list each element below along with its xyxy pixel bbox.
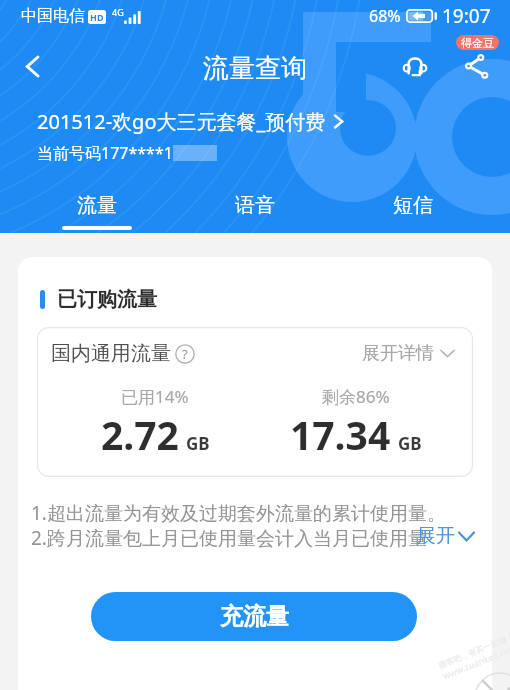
button[interactable]: 展开: [417, 524, 475, 548]
staticText: 流量: [77, 193, 117, 218]
staticText: 68%: [369, 5, 401, 27]
button[interactable]: 语音: [209, 193, 301, 230]
staticText: 流量查询: [203, 52, 307, 85]
staticText: 赚客吧，有买一起赚！: [437, 631, 510, 670]
staticText: 国内通用流量: [51, 341, 171, 366]
staticText: 已订购流量: [57, 287, 157, 312]
staticText: 17.34: [290, 408, 391, 461]
button[interactable]: Back: [8, 42, 56, 90]
staticText: 展开详情: [362, 342, 434, 365]
staticText: 1.超出流量为有效及过期套外流量的累计使用量。: [31, 500, 446, 526]
staticText: 剩余86%: [322, 385, 390, 408]
staticText: 201512-欢go大三元套餐_预付费: [37, 108, 326, 135]
staticText: 语音: [235, 193, 275, 218]
button[interactable]: Help: [175, 344, 195, 364]
staticText: GB: [186, 432, 210, 455]
staticText: 得金豆: [461, 36, 494, 50]
staticText: 中国电信: [21, 6, 85, 26]
staticText: GB: [398, 432, 422, 455]
staticText: ?: [182, 345, 188, 363]
button[interactable]: 201512-欢go大三元套餐_预付费: [37, 108, 343, 135]
staticText: www.zuanke8.com: [441, 640, 510, 681]
staticText: 2.72: [101, 408, 179, 461]
button[interactable]: 流量: [51, 193, 143, 230]
staticText: 2.跨月流量包上月已使用量会计入当月已使用量: [31, 525, 427, 551]
button[interactable]: 短信: [367, 193, 459, 230]
button[interactable]: 充流量: [91, 592, 417, 641]
staticText: 展开: [417, 524, 455, 548]
button[interactable]: Customer service: [393, 44, 437, 88]
staticText: 短信: [393, 193, 433, 218]
button[interactable]: 展开详情: [362, 342, 455, 365]
staticText: 4G: [112, 6, 124, 18]
button[interactable]: Close: [475, 673, 510, 690]
button[interactable]: Share: [455, 44, 499, 88]
staticText: 当前号码177****1: [37, 142, 173, 164]
staticText: HD: [90, 11, 104, 23]
staticText: 19:07: [442, 3, 491, 29]
staticText: 充流量: [220, 602, 289, 631]
button[interactable]: 得金豆: [456, 35, 499, 50]
staticText: 已用14%: [121, 385, 189, 408]
